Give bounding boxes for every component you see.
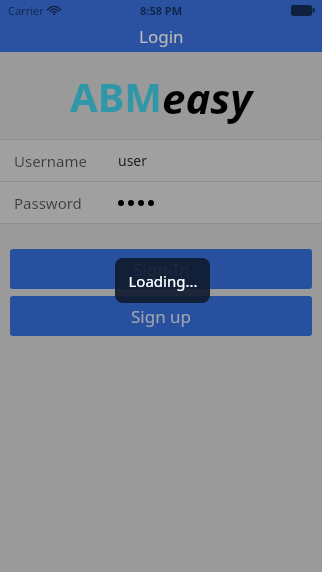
staticText: Carrier — [8, 3, 44, 18]
button[interactable]: Sign-In — [10, 249, 312, 289]
button[interactable]: Username — [0, 140, 322, 181]
staticText: Sign-In — [133, 258, 190, 281]
other: Wi-Fi — [48, 6, 60, 15]
staticText: user — [118, 151, 148, 170]
staticText: Password — [14, 193, 82, 213]
staticText: Username — [14, 151, 87, 171]
other: Battery — [291, 5, 315, 16]
staticText: Sign up — [131, 305, 192, 328]
button[interactable]: Sign up — [10, 296, 312, 336]
staticText: easy — [162, 69, 253, 126]
staticText: 8:58 PM — [140, 3, 183, 18]
staticText: Login — [139, 25, 184, 48]
staticText: ABM — [70, 69, 162, 123]
button[interactable]: Password — [0, 182, 322, 223]
staticText: Loading... — [128, 271, 198, 291]
